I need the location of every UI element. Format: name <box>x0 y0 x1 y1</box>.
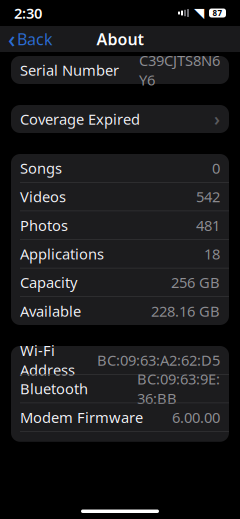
staticText: 18 <box>204 244 220 264</box>
staticText: 481 <box>196 215 220 235</box>
button[interactable]: Wi-Fi Address <box>11 346 229 374</box>
staticText: About <box>96 28 143 50</box>
staticText: Serial Number <box>20 60 119 80</box>
staticText: C39CJTS8N6Y6 <box>139 50 220 89</box>
button[interactable]: Available <box>11 297 229 325</box>
staticText: ◥ <box>194 5 204 20</box>
staticText: Wi-Fi Address <box>20 340 75 379</box>
staticText: Applications <box>20 244 104 264</box>
button[interactable]: Capacity <box>11 268 229 296</box>
staticText: Photos <box>20 215 68 235</box>
button[interactable]: Applications <box>11 240 229 268</box>
button[interactable]: Serial Number <box>11 56 229 84</box>
button[interactable]: Bluetooth <box>11 375 229 403</box>
button[interactable]: Coverage Expired <box>11 105 229 133</box>
button[interactable]: ‹ <box>0 26 61 52</box>
button[interactable]: Videos <box>11 183 229 211</box>
staticText: Available <box>20 301 81 321</box>
staticText: 2:30 <box>14 3 42 23</box>
staticText: 0 <box>212 158 220 178</box>
staticText: Videos <box>20 187 66 206</box>
staticText: 6.00.00 <box>172 407 220 427</box>
staticText: 87 <box>212 8 222 18</box>
staticText: › <box>214 107 220 130</box>
button[interactable]: Photos <box>11 211 229 239</box>
staticText: 256 GB <box>171 273 220 292</box>
staticText: Coverage Expired <box>20 109 140 129</box>
staticText: Back <box>17 28 53 50</box>
button[interactable]: Modem Firmware <box>11 403 229 431</box>
staticText: Songs <box>20 158 62 178</box>
staticText: ‹ <box>8 24 15 54</box>
staticText: 542 <box>196 187 220 206</box>
staticText: BC:09:63:A2:62:D5 <box>97 350 220 370</box>
button[interactable]: Songs <box>11 154 229 182</box>
staticText: 228.16 GB <box>151 301 220 321</box>
staticText: BC:09:63:9E:36:BB <box>137 369 220 408</box>
staticText: Capacity <box>20 273 77 292</box>
staticText: Bluetooth <box>20 379 88 398</box>
staticText: Modem Firmware <box>20 407 143 427</box>
